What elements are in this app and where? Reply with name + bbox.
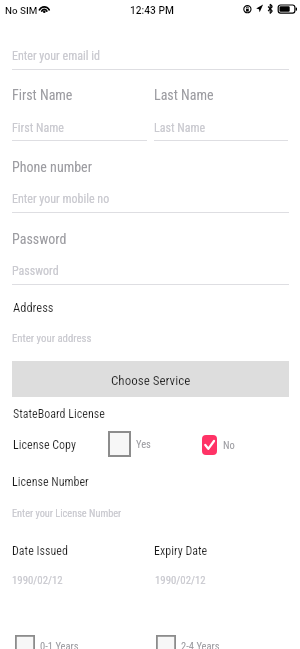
staticText: Password: [12, 264, 59, 278]
staticText: Choose Service: [111, 373, 191, 388]
staticText: Address: [13, 300, 54, 315]
staticText: Expiry Date: [154, 544, 208, 558]
staticText: No: [223, 439, 235, 451]
button[interactable]: Checked: [202, 435, 235, 455]
staticText: 2-4 Years: [181, 640, 220, 649]
button[interactable]: Checkbox: [156, 635, 220, 649]
staticText: Last Name: [154, 121, 206, 135]
staticText: 0-1 Years: [40, 640, 79, 649]
staticText: 12:43 PM: [130, 5, 174, 17]
staticText: Enter your email id: [12, 49, 100, 63]
staticText: 1990/02/12: [155, 574, 206, 587]
staticText: Password: [12, 231, 67, 247]
button[interactable]: Choose Service: [12, 361, 289, 397]
staticText: StateBoard License: [13, 407, 105, 421]
staticText: Phone number: [12, 159, 92, 175]
other: Checked: [202, 435, 217, 455]
staticText: First Name: [12, 87, 73, 103]
staticText: Date Issued: [12, 544, 68, 558]
other: Checkbox: [15, 635, 35, 649]
staticText: Last Name: [154, 87, 214, 103]
button[interactable]: Checkbox: [15, 635, 79, 649]
staticText: Enter your address: [12, 332, 92, 345]
button[interactable]: Checkbox: [108, 431, 151, 457]
staticText: Enter your License Number: [12, 507, 122, 519]
staticText: 1990/02/12: [12, 574, 63, 587]
other: Checkbox: [108, 431, 131, 457]
staticText: License Number: [12, 475, 89, 489]
staticText: First Name: [12, 121, 64, 135]
staticText: No SIM: [5, 5, 38, 16]
staticText: Yes: [136, 438, 151, 450]
other: Checkbox: [156, 635, 176, 649]
staticText: License Copy: [13, 438, 76, 452]
staticText: Enter your mobile no: [12, 192, 110, 206]
